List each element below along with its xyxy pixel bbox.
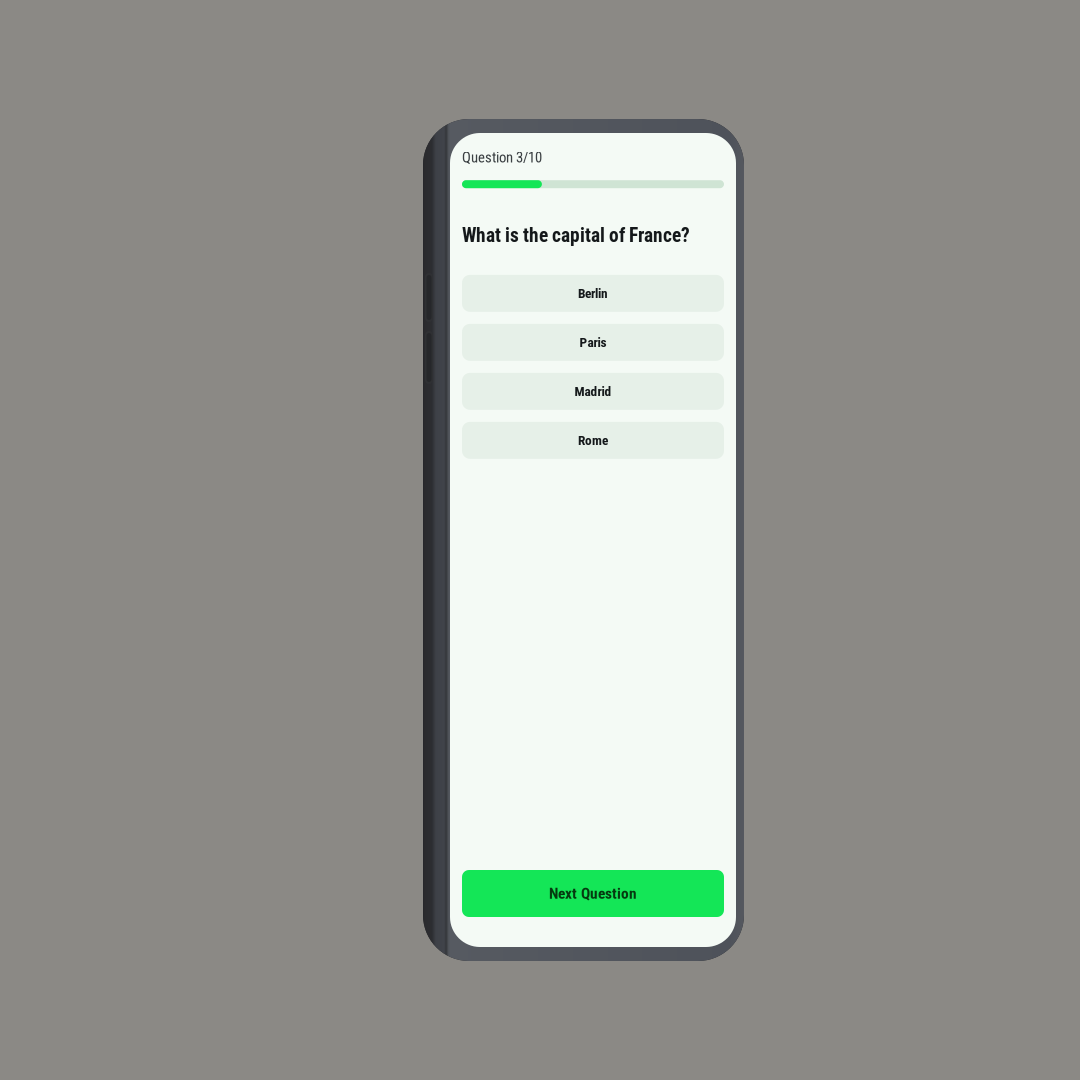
staticText: Madrid (574, 383, 611, 399)
staticText: Berlin (578, 285, 608, 301)
staticText: Rome (578, 432, 608, 448)
staticText: What is the capital of France? (462, 224, 690, 247)
button[interactable]: Madrid (462, 373, 724, 410)
button[interactable]: Paris (462, 324, 724, 361)
staticText: Question 3/10 (462, 149, 542, 166)
staticText: Paris (579, 334, 606, 350)
button[interactable]: Next Question (462, 870, 724, 917)
staticText: Next Question (549, 884, 637, 902)
button[interactable]: Berlin (462, 275, 724, 312)
button[interactable]: Rome (462, 422, 724, 459)
